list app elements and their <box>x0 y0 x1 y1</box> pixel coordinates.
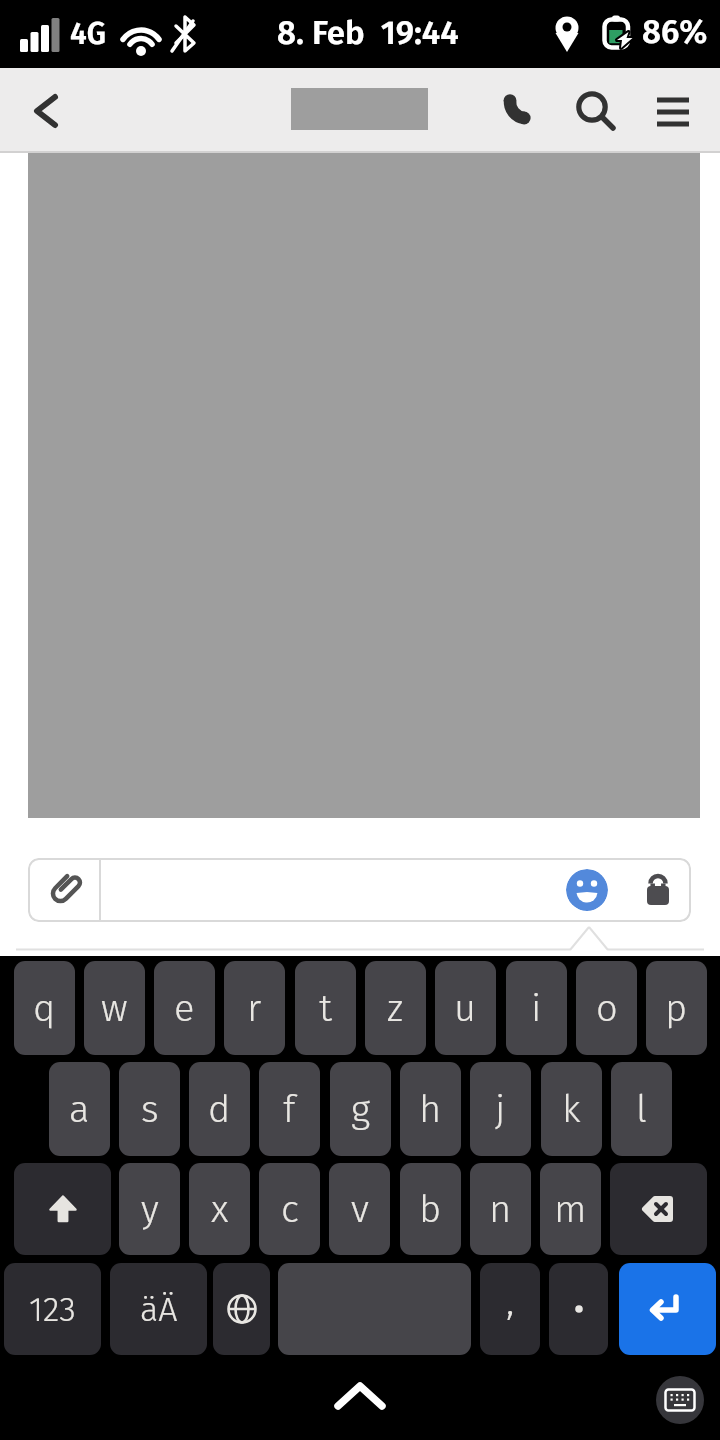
staticText: n <box>489 1186 512 1232</box>
staticText: r <box>247 985 262 1031</box>
staticText: g <box>351 1086 371 1132</box>
staticText: d <box>208 1086 231 1132</box>
staticText: w <box>101 985 128 1031</box>
button[interactable] <box>14 1163 111 1255</box>
staticText: 4G <box>70 16 106 52</box>
staticText: b <box>419 1186 442 1232</box>
button[interactable]: w <box>84 961 145 1055</box>
staticText: o <box>596 985 618 1031</box>
button[interactable]: d <box>189 1062 250 1156</box>
button[interactable] <box>549 1263 608 1355</box>
button[interactable]: c <box>259 1163 320 1255</box>
button[interactable]: t <box>295 961 356 1055</box>
staticText: x <box>211 1186 229 1232</box>
button[interactable]: i <box>506 961 567 1055</box>
staticText: z <box>387 985 404 1031</box>
staticText: q <box>33 985 56 1031</box>
button[interactable]: v <box>329 1163 390 1255</box>
button[interactable]: q <box>14 961 75 1055</box>
button[interactable] <box>566 84 622 140</box>
button[interactable] <box>656 1376 704 1424</box>
staticText: h <box>419 1086 442 1132</box>
button[interactable] <box>636 866 680 914</box>
staticText: m <box>554 1186 587 1232</box>
button[interactable]: z <box>365 961 426 1055</box>
button[interactable]: y <box>119 1163 180 1255</box>
button[interactable]: k <box>541 1062 602 1156</box>
button[interactable] <box>650 90 698 134</box>
button[interactable] <box>566 869 608 911</box>
button[interactable] <box>28 858 100 922</box>
staticText: t <box>319 985 332 1031</box>
button[interactable] <box>330 1372 390 1418</box>
button[interactable] <box>213 1263 270 1355</box>
button[interactable]: h <box>400 1062 461 1156</box>
button[interactable]: s <box>119 1062 180 1156</box>
button[interactable]: b <box>400 1163 461 1255</box>
button[interactable]: , <box>480 1263 540 1355</box>
button[interactable] <box>619 1263 716 1355</box>
button[interactable] <box>22 86 74 136</box>
button[interactable]: j <box>470 1062 531 1156</box>
staticText: c <box>281 1186 299 1232</box>
button[interactable]: a <box>49 1062 110 1156</box>
staticText: äÄ <box>140 1289 178 1330</box>
staticText: a <box>69 1086 90 1132</box>
staticText: 86% <box>642 12 708 52</box>
staticText: , <box>506 1277 515 1325</box>
staticText: l <box>636 1086 647 1132</box>
staticText: u <box>454 985 477 1031</box>
button[interactable]: x <box>189 1163 250 1255</box>
staticText: p <box>665 985 688 1031</box>
staticText: s <box>141 1086 159 1132</box>
button[interactable]: r <box>224 961 285 1055</box>
button[interactable]: e <box>154 961 215 1055</box>
button[interactable]: l <box>611 1062 672 1156</box>
button[interactable]: m <box>540 1163 601 1255</box>
button[interactable] <box>488 86 540 138</box>
staticText: k <box>562 1086 581 1132</box>
staticText: 123 <box>29 1289 76 1330</box>
staticText: j <box>495 1086 506 1132</box>
button[interactable] <box>278 1263 471 1355</box>
staticText: v <box>351 1186 369 1232</box>
button[interactable]: 123 <box>4 1263 101 1355</box>
button[interactable]: p <box>646 961 707 1055</box>
button[interactable]: g <box>330 1062 391 1156</box>
button[interactable]: äÄ <box>110 1263 207 1355</box>
button[interactable]: u <box>435 961 496 1055</box>
staticText: y <box>141 1186 159 1232</box>
button[interactable] <box>610 1163 707 1255</box>
staticText: 8. Feb 19:44 <box>277 13 459 53</box>
staticText: f <box>283 1086 296 1132</box>
staticText: e <box>174 985 195 1031</box>
staticText: i <box>531 985 542 1031</box>
button[interactable]: o <box>576 961 637 1055</box>
button[interactable]: n <box>470 1163 531 1255</box>
button[interactable]: f <box>259 1062 320 1156</box>
